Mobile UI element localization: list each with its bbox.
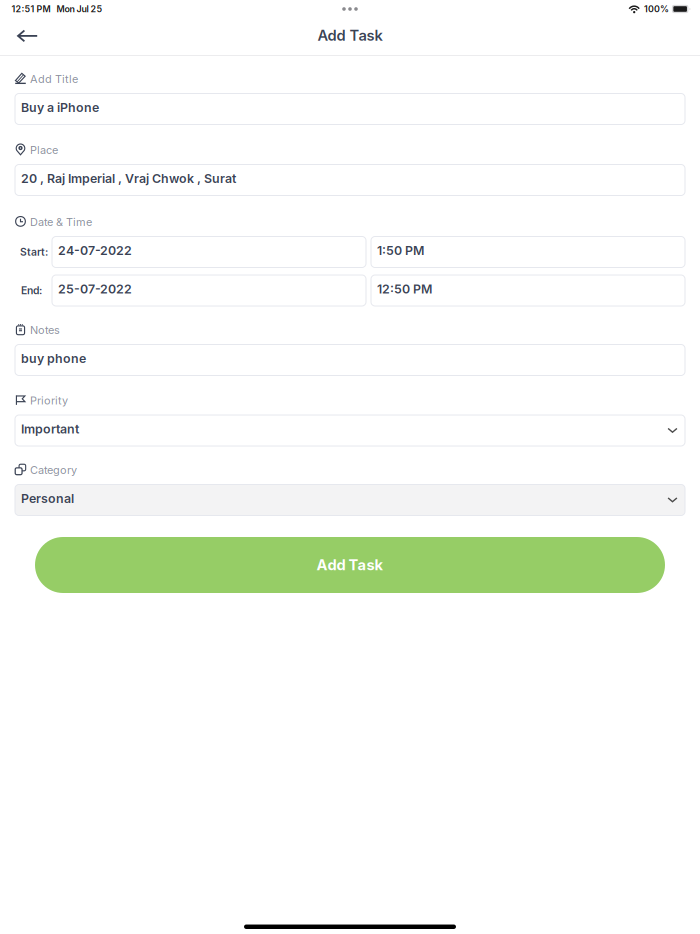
staticText: Important xyxy=(21,421,79,436)
staticText: Personal xyxy=(21,491,74,506)
staticText: End: xyxy=(21,284,42,297)
staticText: Place xyxy=(30,143,58,157)
staticText: 100% xyxy=(644,4,669,14)
staticText: Buy a iPhone xyxy=(21,100,99,115)
staticText: 1:50 PM xyxy=(377,243,424,258)
staticText: Notes xyxy=(30,323,60,337)
staticText: 12:50 PM xyxy=(377,281,432,296)
staticText: Add Task xyxy=(317,27,382,44)
button[interactable]: Add Task xyxy=(35,537,665,593)
staticText: 20 , Raj Imperial , Vraj Chwok , Surat xyxy=(21,171,236,186)
staticText: Mon Jul 25 xyxy=(50,4,102,14)
staticText: 12:51 PM xyxy=(11,4,50,14)
staticText: 24-07-2022 xyxy=(58,243,132,258)
staticText: Add Task xyxy=(316,556,383,574)
staticText: Category xyxy=(30,463,77,477)
staticText: Priority xyxy=(30,394,68,407)
staticText: 25-07-2022 xyxy=(58,281,132,296)
button[interactable]: Back xyxy=(0,22,55,55)
staticText: Date & Time xyxy=(30,215,92,229)
staticText: buy phone xyxy=(21,351,86,366)
staticText: Start: xyxy=(20,246,48,258)
staticText: Add Title xyxy=(30,72,78,86)
